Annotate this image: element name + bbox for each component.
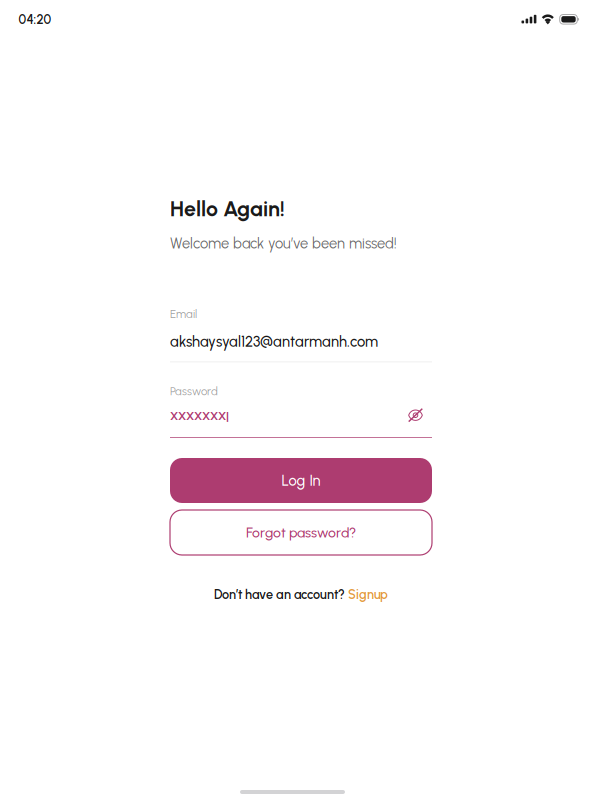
button[interactable]: Email bbox=[170, 307, 432, 362]
staticText: Signup bbox=[345, 587, 388, 602]
staticText: Log In bbox=[281, 472, 320, 489]
staticText: XXXXXXX| bbox=[170, 409, 229, 423]
button[interactable]: Signup bbox=[345, 587, 388, 602]
staticText: Don’t have an account? bbox=[214, 587, 345, 602]
button[interactable]: Forgot password? bbox=[170, 510, 432, 555]
button[interactable]: Show password bbox=[408, 403, 432, 427]
button[interactable]: Log In bbox=[170, 458, 432, 503]
staticText: Welcome back you’ve been missed! bbox=[170, 235, 397, 252]
staticText: Hello Again! bbox=[170, 196, 285, 222]
staticText: Forgot password? bbox=[246, 524, 356, 541]
staticText: Password bbox=[170, 384, 218, 398]
staticText: Email bbox=[170, 307, 197, 321]
button[interactable]: Password bbox=[170, 384, 402, 426]
staticText: akshaysyal123@antarmanh.com bbox=[170, 333, 378, 350]
staticText: 04:20 bbox=[18, 12, 51, 27]
